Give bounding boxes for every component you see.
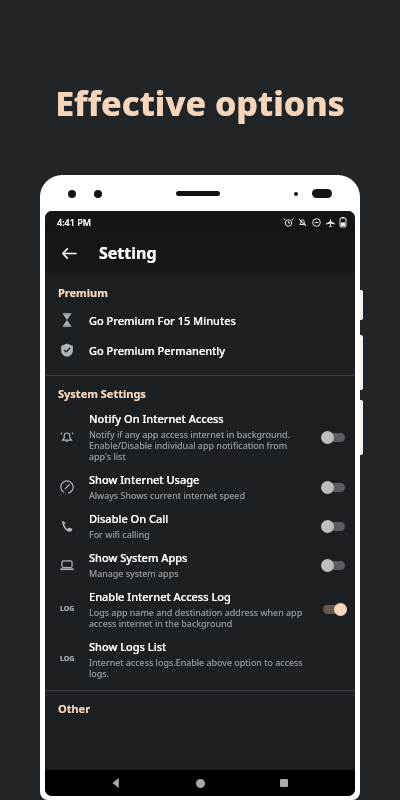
staticText: System Settings — [58, 386, 146, 401]
staticText: LOG — [60, 604, 75, 614]
staticText: Show Internet Usage — [89, 472, 200, 487]
button[interactable]: Home — [187, 770, 213, 796]
button[interactable]: Go Premium For 15 Minutes — [45, 305, 355, 335]
staticText: Internet access logs.Enable above option… — [89, 656, 307, 679]
button[interactable]: Disable On Call — [45, 506, 355, 545]
staticText: Go Premium Permanently — [89, 343, 226, 358]
staticText: Show System Apps — [89, 550, 188, 565]
staticText: Logs app name and destination address wh… — [89, 606, 307, 629]
button[interactable]: LOG — [45, 584, 355, 634]
button[interactable]: Toggle — [321, 519, 347, 533]
button[interactable]: Toggle — [321, 480, 347, 494]
staticText: 4:41 PM — [57, 216, 91, 228]
staticText: Manage system apps — [89, 567, 179, 579]
staticText: Always Shows current internet speed — [89, 489, 245, 501]
staticText: Notify On Internet Access — [89, 411, 224, 426]
staticText: LOG — [60, 654, 75, 664]
staticText: Effective options — [0, 80, 400, 126]
button[interactable]: Show Internet Usage — [45, 467, 355, 506]
staticText: Enable Internet Access Log — [89, 589, 231, 604]
button[interactable]: Go Premium Permanently — [45, 335, 355, 365]
staticText: Go Premium For 15 Minutes — [89, 313, 236, 328]
button[interactable]: Notify On Internet Access — [45, 406, 355, 467]
button[interactable]: Toggle — [321, 602, 347, 616]
button[interactable]: Toggle — [321, 430, 347, 444]
button[interactable]: Show System Apps — [45, 545, 355, 584]
staticText: Show Logs List — [89, 639, 167, 654]
staticText: Other — [58, 701, 91, 716]
button[interactable]: Toggle — [321, 558, 347, 572]
button[interactable]: Recents — [271, 770, 297, 796]
staticText: Premium — [58, 285, 108, 300]
staticText: For wifi calling — [89, 528, 150, 540]
button[interactable]: LOG — [45, 634, 355, 684]
staticText: Notify if any app access internet in bac… — [89, 428, 307, 462]
staticText: Setting — [99, 242, 157, 264]
button[interactable]: Back — [103, 770, 129, 796]
staticText: Disable On Call — [89, 511, 169, 526]
button[interactable]: Back — [53, 237, 85, 269]
